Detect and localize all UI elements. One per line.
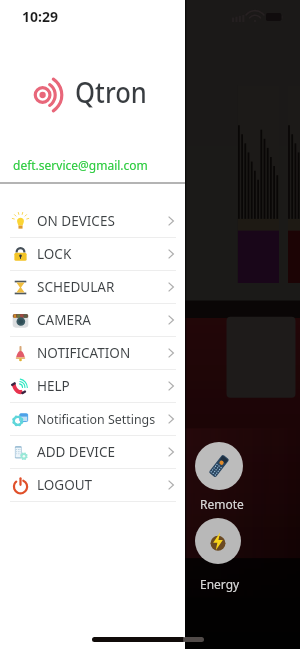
staticText: deft.service@gmail.com xyxy=(13,157,148,173)
staticText: NOTIFICATION xyxy=(37,344,131,362)
button[interactable]: ON DEVICES xyxy=(0,205,185,238)
button[interactable]: SCHEDULAR xyxy=(0,271,185,304)
button[interactable]: LOGOUT xyxy=(0,469,185,502)
button[interactable]: HELP xyxy=(0,370,185,403)
staticText: ON DEVICES xyxy=(37,212,115,230)
staticText: Energy xyxy=(200,576,240,592)
button[interactable]: NOTIFICATION xyxy=(0,337,185,370)
staticText: Notification Settings xyxy=(37,411,156,428)
staticText: LOGOUT xyxy=(37,476,93,494)
staticText: CAMERA xyxy=(37,311,91,329)
staticText: Qtron xyxy=(75,72,147,112)
staticText: ADD DEVICE xyxy=(37,443,115,461)
staticText: SCHEDULAR xyxy=(37,278,115,296)
staticText: LOCK xyxy=(37,245,72,263)
staticText: HELP xyxy=(37,377,70,395)
button[interactable]: Remote xyxy=(195,442,243,490)
button[interactable]: ADD DEVICE xyxy=(0,436,185,469)
button[interactable]: Energy xyxy=(195,518,241,564)
button[interactable]: CAMERA xyxy=(0,304,185,337)
button[interactable]: LOCK xyxy=(0,238,185,271)
staticText: Remote xyxy=(200,496,244,512)
button[interactable]: Notification Settings xyxy=(0,403,185,436)
staticText: 10:29 xyxy=(22,7,58,26)
